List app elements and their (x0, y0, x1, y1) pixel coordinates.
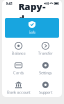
button[interactable]: Bank account (5, 80, 32, 96)
staticText: 9:41 (5, 1, 12, 6)
button[interactable]: Safe (5, 18, 59, 38)
staticText: Transfer (38, 50, 53, 56)
staticText: Rapyd (18, 0, 45, 25)
button[interactable]: Transfer (32, 41, 59, 57)
button[interactable]: Settings (32, 60, 59, 77)
staticText: Cards (13, 70, 24, 75)
button[interactable]: Balance (5, 41, 32, 57)
button[interactable]: Support (32, 80, 59, 96)
staticText: Safe (28, 29, 35, 35)
staticText: Bank account (7, 89, 30, 95)
button[interactable]: Cards (5, 60, 32, 77)
staticText: Balance (11, 50, 25, 56)
staticText: Support (39, 89, 52, 95)
staticText: Settings (39, 70, 52, 75)
